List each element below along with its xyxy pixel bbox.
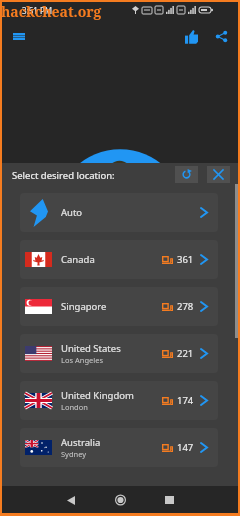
staticText: hackcheat.org bbox=[1, 2, 102, 21]
staticText: Los Angeles bbox=[61, 355, 104, 365]
button[interactable]: United Kingdom bbox=[20, 381, 218, 420]
staticText: 174 bbox=[177, 394, 194, 407]
button[interactable]: Auto bbox=[20, 193, 218, 232]
button[interactable]: Home bbox=[107, 487, 133, 513]
staticText: London bbox=[61, 402, 88, 412]
button[interactable]: Canada bbox=[20, 240, 218, 279]
button[interactable]: Refresh bbox=[175, 166, 198, 183]
staticText: 221 bbox=[177, 347, 194, 360]
button[interactable]: Australia bbox=[20, 428, 218, 467]
button[interactable]: Close bbox=[207, 166, 230, 183]
button[interactable]: Open navigation menu bbox=[5, 22, 33, 50]
staticText: United States bbox=[61, 342, 121, 355]
staticText: Select desired location: bbox=[12, 169, 115, 182]
button[interactable]: Rate this app bbox=[178, 23, 205, 50]
staticText: Canada bbox=[61, 253, 95, 266]
staticText: 147 bbox=[177, 441, 194, 454]
staticText: 278 bbox=[177, 300, 194, 313]
staticText: Singapore bbox=[61, 300, 107, 313]
button[interactable]: Recent apps bbox=[156, 487, 182, 513]
staticText: Auto bbox=[61, 206, 83, 219]
staticText: United Kingdom bbox=[61, 389, 134, 402]
button[interactable]: United States bbox=[20, 334, 218, 373]
staticText: 3:51 PM bbox=[22, 5, 53, 16]
button[interactable]: Singapore bbox=[20, 287, 218, 326]
staticText: Australia bbox=[61, 436, 101, 449]
staticText: Sydney bbox=[61, 449, 87, 459]
button[interactable]: Share bbox=[208, 23, 235, 50]
staticText: 361 bbox=[177, 253, 194, 266]
button[interactable]: Back bbox=[58, 487, 84, 513]
